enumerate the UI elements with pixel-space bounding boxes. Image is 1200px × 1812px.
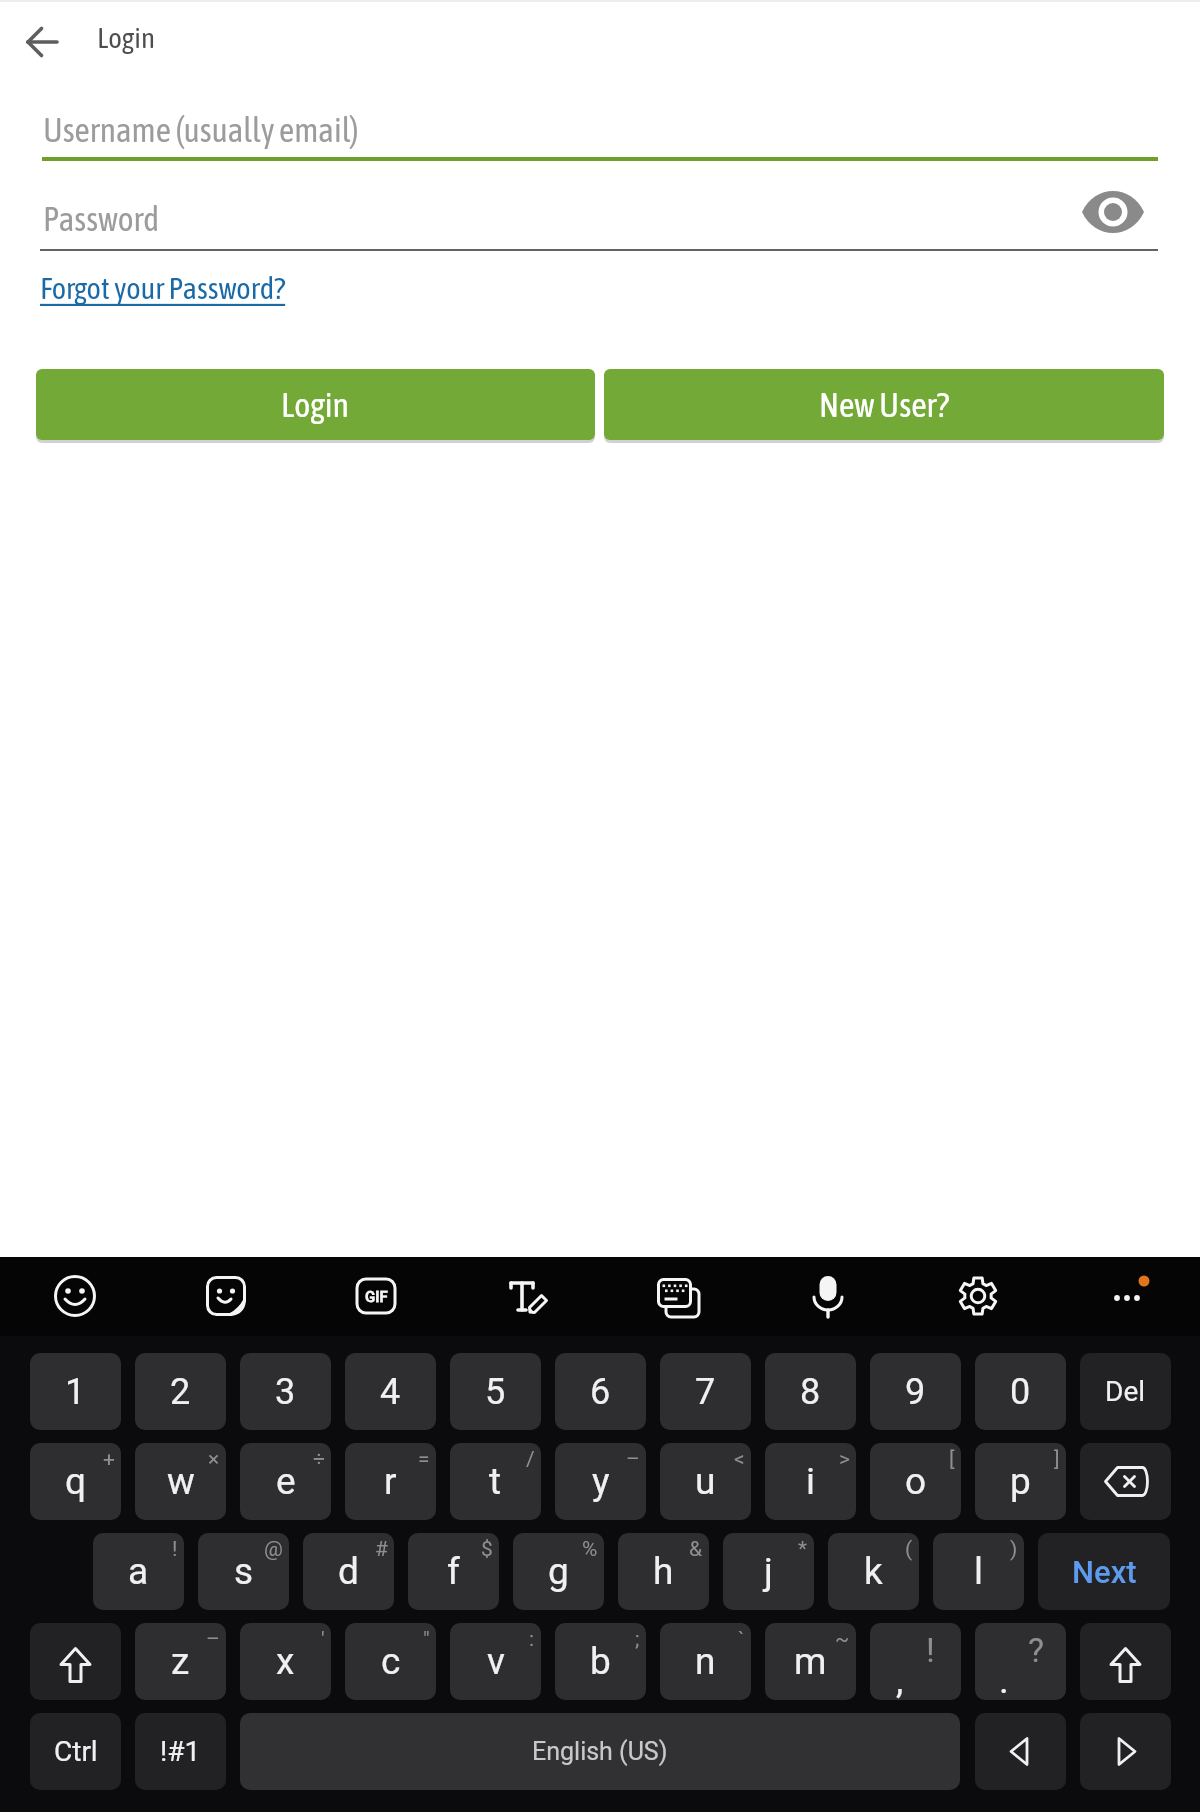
button[interactable]: [193, 1264, 257, 1328]
button[interactable]: q: [30, 1443, 121, 1520]
button[interactable]: [870, 1623, 961, 1700]
staticText: w: [167, 1460, 195, 1503]
button[interactable]: [975, 1713, 1066, 1790]
staticText: $: [481, 1537, 493, 1562]
button[interactable]: 6: [555, 1353, 646, 1430]
staticText: GIF: [365, 1288, 388, 1306]
button[interactable]: o: [870, 1443, 961, 1520]
staticText: b: [590, 1640, 611, 1683]
button[interactable]: 3: [240, 1353, 331, 1430]
staticText: Login: [97, 21, 156, 54]
button[interactable]: 0: [975, 1353, 1066, 1430]
button[interactable]: m: [765, 1623, 856, 1700]
button[interactable]: n: [660, 1623, 751, 1700]
button[interactable]: p: [975, 1443, 1066, 1520]
button[interactable]: Next: [1038, 1533, 1170, 1610]
button[interactable]: g: [513, 1533, 604, 1610]
staticText: d: [338, 1550, 359, 1593]
button[interactable]: Ctrl: [30, 1713, 121, 1790]
button[interactable]: 7: [660, 1353, 751, 1430]
staticText: l: [974, 1550, 983, 1593]
staticText: !: [172, 1537, 178, 1562]
button[interactable]: y: [555, 1443, 646, 1520]
button[interactable]: Forgot your Password?: [40, 271, 286, 306]
staticText: ;: [635, 1627, 640, 1652]
button[interactable]: u: [660, 1443, 751, 1520]
button[interactable]: [14, 14, 70, 70]
button[interactable]: x: [240, 1623, 331, 1700]
button[interactable]: [1080, 1443, 1171, 1520]
button[interactable]: [493, 1264, 557, 1328]
button[interactable]: [343, 1264, 407, 1328]
staticText: o: [905, 1460, 927, 1503]
button[interactable]: English (US): [240, 1713, 960, 1790]
staticText: English (US): [532, 1737, 668, 1766]
staticText: v: [487, 1640, 505, 1683]
button[interactable]: [30, 1623, 121, 1700]
button[interactable]: Login: [36, 369, 595, 440]
button[interactable]: 2: [135, 1353, 226, 1430]
button[interactable]: [43, 1264, 107, 1328]
staticText: 6: [590, 1371, 611, 1413]
button[interactable]: [793, 1264, 857, 1328]
button[interactable]: e: [240, 1443, 331, 1520]
button[interactable]: w: [135, 1443, 226, 1520]
staticText: +: [103, 1447, 115, 1472]
staticText: ]: [1054, 1447, 1060, 1472]
button[interactable]: [1093, 1264, 1157, 1328]
staticText: 9: [905, 1371, 926, 1413]
staticText: Password: [43, 200, 160, 238]
staticText: n: [695, 1640, 716, 1683]
button[interactable]: d: [303, 1533, 394, 1610]
staticText: s: [234, 1550, 254, 1593]
button[interactable]: New User?: [604, 369, 1164, 440]
staticText: 3: [275, 1371, 296, 1413]
button[interactable]: [1080, 1713, 1171, 1790]
button[interactable]: [643, 1264, 707, 1328]
button[interactable]: i: [765, 1443, 856, 1520]
button[interactable]: s: [198, 1533, 289, 1610]
staticText: 8: [800, 1371, 821, 1413]
staticText: f: [447, 1550, 460, 1593]
button[interactable]: Del: [1080, 1353, 1171, 1430]
staticText: 2: [170, 1371, 191, 1413]
staticText: /: [526, 1447, 535, 1472]
staticText: t: [489, 1460, 502, 1503]
button[interactable]: r: [345, 1443, 436, 1520]
staticText: ?: [1028, 1630, 1045, 1670]
button[interactable]: 5: [450, 1353, 541, 1430]
button[interactable]: [1083, 182, 1143, 242]
staticText: g: [548, 1550, 569, 1593]
button[interactable]: [975, 1623, 1066, 1700]
button[interactable]: !#1: [135, 1713, 226, 1790]
staticText: #: [375, 1537, 388, 1562]
button[interactable]: c: [345, 1623, 436, 1700]
button[interactable]: h: [618, 1533, 709, 1610]
button[interactable]: j: [723, 1533, 814, 1610]
button[interactable]: [1080, 1623, 1171, 1700]
button[interactable]: 8: [765, 1353, 856, 1430]
staticText: i: [806, 1460, 815, 1503]
button[interactable]: [943, 1264, 1007, 1328]
staticText: ~: [835, 1627, 850, 1652]
staticText: –: [206, 1627, 220, 1652]
button[interactable]: 1: [30, 1353, 121, 1430]
staticText: =: [418, 1447, 430, 1472]
button[interactable]: b: [555, 1623, 646, 1700]
staticText: q: [65, 1460, 87, 1503]
button[interactable]: k: [828, 1533, 919, 1610]
staticText: Next: [1072, 1554, 1137, 1590]
button[interactable]: t: [450, 1443, 541, 1520]
button[interactable]: 9: [870, 1353, 961, 1430]
button[interactable]: z: [135, 1623, 226, 1700]
staticText: e: [276, 1460, 296, 1503]
staticText: Forgot your Password?: [40, 271, 286, 306]
staticText: 1: [65, 1371, 86, 1413]
button[interactable]: l: [933, 1533, 1024, 1610]
staticText: x: [276, 1640, 295, 1683]
staticText: ": [423, 1627, 430, 1652]
button[interactable]: v: [450, 1623, 541, 1700]
button[interactable]: 4: [345, 1353, 436, 1430]
button[interactable]: a: [93, 1533, 184, 1610]
button[interactable]: f: [408, 1533, 499, 1610]
